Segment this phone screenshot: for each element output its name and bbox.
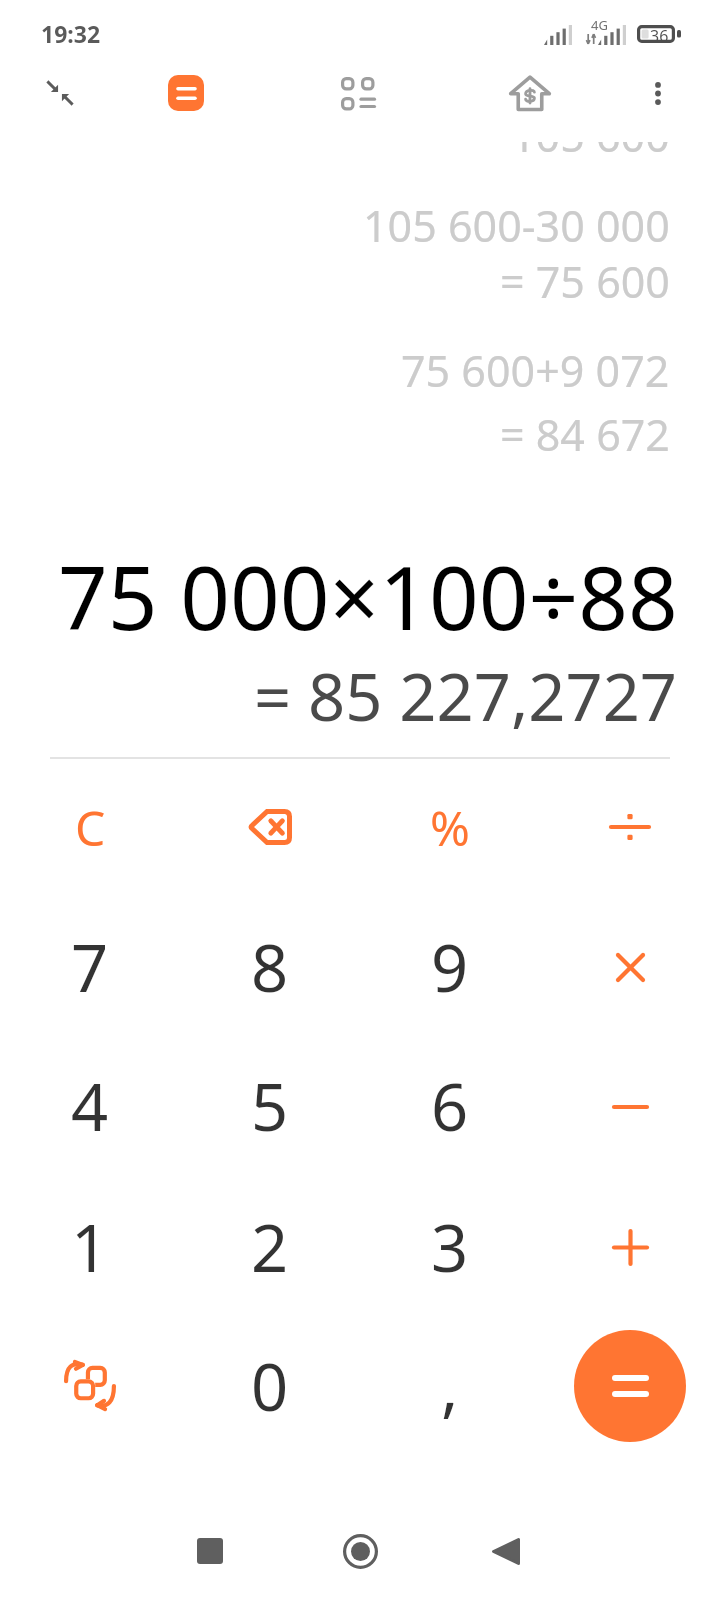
button[interactable]: 5 [180, 1037, 360, 1176]
button[interactable]: 2 [180, 1177, 360, 1317]
button[interactable]: Back [456, 1501, 556, 1600]
staticText: 6 [431, 1062, 469, 1151]
button[interactable]: 9 [360, 897, 540, 1037]
staticText: = 85 227,2727 [254, 652, 678, 741]
staticText: 4G [591, 16, 608, 34]
button[interactable]: 4 [0, 1037, 180, 1176]
button[interactable]: , [360, 1316, 540, 1456]
staticText: 0 [251, 1342, 289, 1431]
button[interactable]: 6 [360, 1037, 540, 1176]
button[interactable]: Home [310, 1501, 410, 1600]
button[interactable]: Swap units [0, 1316, 180, 1456]
button[interactable]: 3 [360, 1177, 540, 1317]
button[interactable]: Converter [329, 65, 385, 121]
button[interactable]: Calculator [168, 75, 204, 111]
button[interactable]: Recents [160, 1501, 260, 1600]
button[interactable]: 1 [0, 1177, 180, 1317]
button[interactable]: Mortgage [502, 65, 558, 121]
button[interactable]: Equals [574, 1330, 686, 1442]
staticText: 19:32 [41, 18, 101, 49]
button[interactable]: 7 [0, 897, 180, 1037]
button[interactable]: Multiply [540, 897, 720, 1037]
button[interactable]: Divide [540, 764, 720, 890]
button[interactable]: Collapse [32, 65, 88, 121]
staticText: , [441, 1342, 459, 1431]
staticText: 75 600+9 072 [401, 341, 670, 400]
staticText: C [75, 795, 106, 860]
staticText: 75 000×100÷88 [58, 537, 678, 655]
staticText: 4 [71, 1062, 109, 1151]
button[interactable]: More options [630, 65, 686, 121]
button[interactable]: Equals [540, 1316, 720, 1456]
button[interactable]: C [0, 764, 180, 890]
staticText: 8 [251, 923, 289, 1012]
button[interactable]: Backspace [180, 764, 360, 890]
button[interactable]: Plus [540, 1177, 720, 1317]
staticText: = 75 600 [500, 252, 670, 311]
button[interactable]: Minus [540, 1037, 720, 1176]
staticText: 1 [71, 1203, 109, 1292]
staticText: 9 [431, 923, 469, 1012]
staticText: 2 [251, 1203, 289, 1292]
staticText: 5 [251, 1062, 289, 1151]
staticText: 105 600-30 000 [363, 196, 670, 255]
staticText: 7 [71, 923, 109, 1012]
button[interactable]: 0 [180, 1316, 360, 1456]
staticText: 3 [431, 1203, 469, 1292]
staticText: = 84 672 [500, 405, 670, 464]
staticText: 36 [650, 25, 669, 43]
staticText: 105 600 [511, 142, 670, 165]
staticText: % [430, 795, 470, 860]
button[interactable]: 8 [180, 897, 360, 1037]
button[interactable]: % [360, 764, 540, 890]
